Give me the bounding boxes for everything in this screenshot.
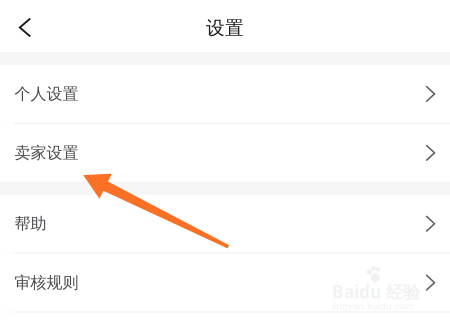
staticText: Baidu 经验 bbox=[332, 280, 420, 303]
button[interactable]: Back bbox=[0, 0, 49, 52]
button[interactable]: 帮助 bbox=[0, 195, 450, 253]
staticText: 个人设置 bbox=[14, 84, 78, 104]
staticText: 审核规则 bbox=[14, 273, 78, 292]
button[interactable]: 卖家设置 bbox=[0, 124, 450, 182]
staticText: 卖家设置 bbox=[14, 143, 78, 163]
staticText: 设置 bbox=[206, 16, 244, 39]
staticText: 帮助 bbox=[14, 214, 46, 234]
button[interactable]: 个人设置 bbox=[0, 65, 450, 123]
staticText: jingyan.baidu.com bbox=[332, 300, 414, 312]
button[interactable]: 审核规则 bbox=[0, 254, 450, 312]
